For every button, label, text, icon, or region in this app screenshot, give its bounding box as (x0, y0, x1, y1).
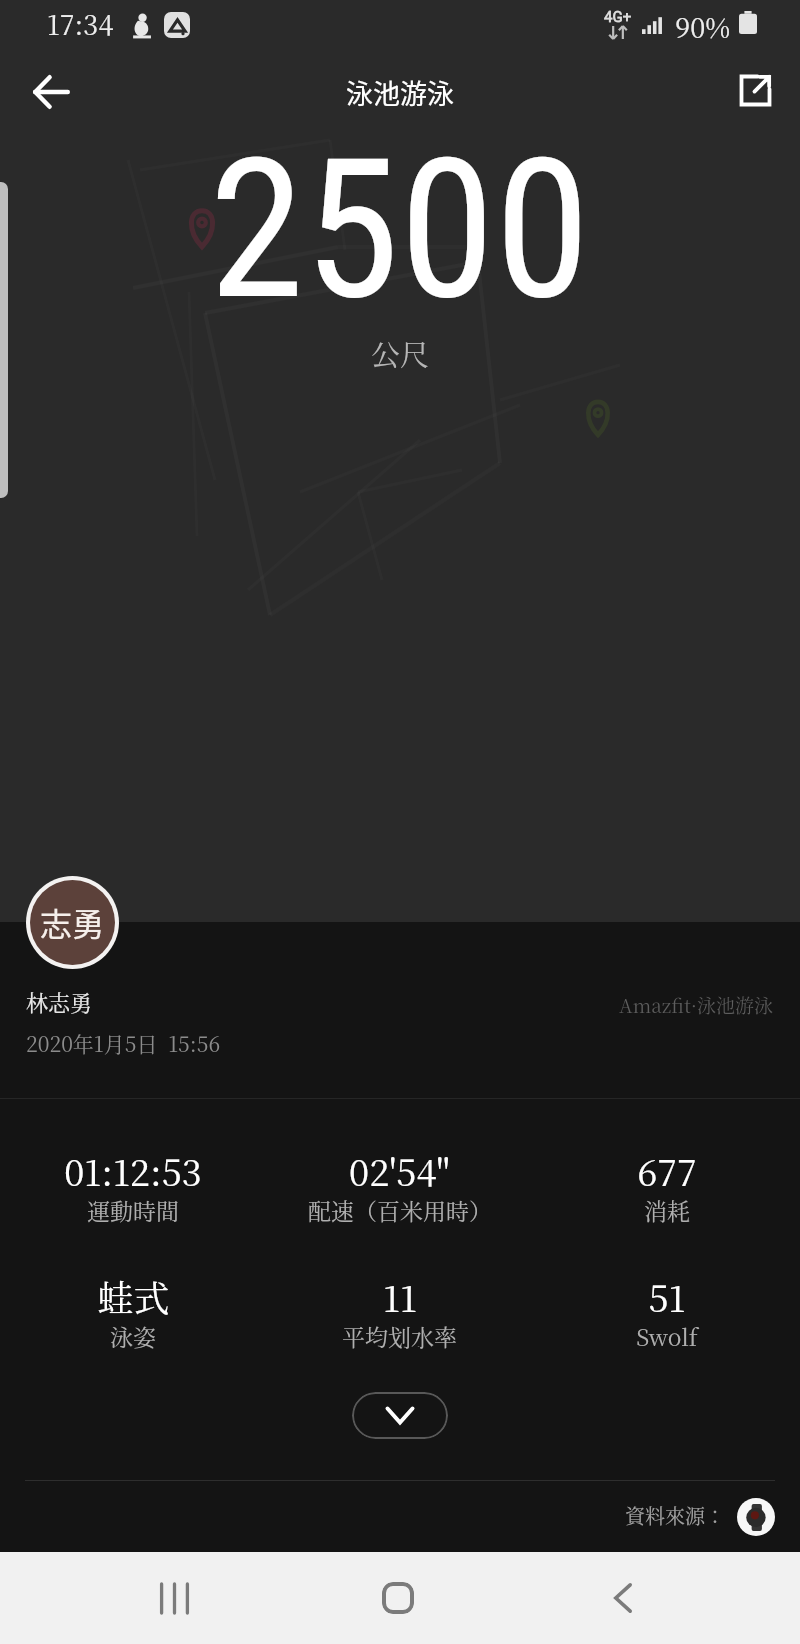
button[interactable]: Back (578, 1552, 668, 1644)
staticText: 運動時間 (87, 1194, 179, 1227)
staticText: 泳池游泳 (346, 73, 454, 112)
staticText: 02'54" (349, 1145, 450, 1197)
staticText: 2500 (209, 117, 591, 343)
button[interactable]: Show more (352, 1392, 448, 1439)
staticText: 17:34 (47, 4, 114, 43)
staticText: 11 (383, 1271, 417, 1323)
staticText: 消耗 (644, 1194, 690, 1227)
staticText: Swolf (636, 1320, 698, 1353)
staticText: 51 (648, 1271, 686, 1323)
staticText: 平均划水率 (342, 1320, 457, 1353)
staticText: 4G+ (604, 8, 632, 26)
button[interactable]: Profile (26, 876, 119, 969)
button[interactable]: Share (724, 59, 787, 121)
staticText: Amazfit·泳池游泳 (619, 991, 774, 1018)
staticText: 2020年1月5日 15:56 (26, 1028, 221, 1058)
staticText: 資料來源： (625, 1501, 725, 1530)
button[interactable]: Home (353, 1552, 443, 1644)
staticText: 蛙式 (97, 1271, 170, 1323)
staticText: 林志勇 (26, 986, 93, 1018)
button[interactable]: Data source device (737, 1498, 775, 1536)
staticText: 01:12:53 (64, 1145, 202, 1197)
staticText: 677 (637, 1145, 697, 1197)
staticText: 泳姿 (110, 1320, 156, 1353)
button[interactable]: Recent apps (130, 1552, 220, 1644)
staticText: 志勇 (40, 899, 105, 945)
staticText: 公尺 (371, 333, 430, 375)
button[interactable]: Back (20, 61, 83, 123)
staticText: 配速（百米用時） (308, 1194, 492, 1227)
staticText: 90% (675, 7, 731, 46)
